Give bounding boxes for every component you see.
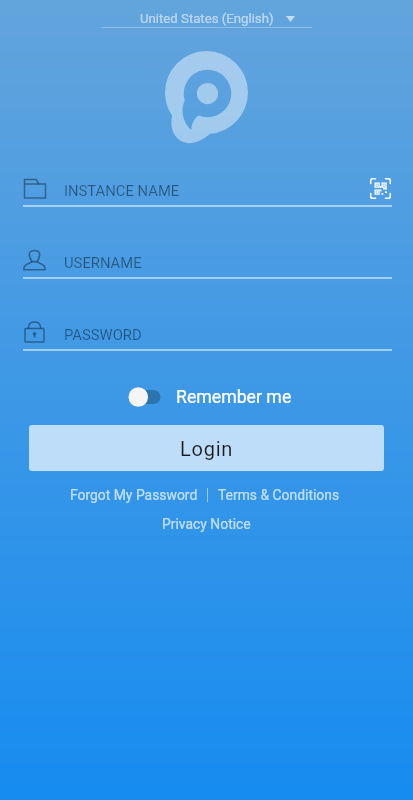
staticText: Remember me <box>176 387 292 408</box>
button[interactable]: United States (English) <box>101 10 312 27</box>
button[interactable]: Scan QR code <box>369 177 392 200</box>
staticText: USERNAME <box>64 254 142 271</box>
button[interactable]: Terms & Conditions <box>208 483 346 507</box>
staticText: INSTANCE NAME <box>64 182 180 199</box>
button[interactable]: Remember me <box>128 384 292 410</box>
staticText: Login <box>180 437 234 460</box>
button[interactable]: Forgot My Password <box>64 483 207 507</box>
button[interactable]: Privacy Notice <box>156 514 257 534</box>
button[interactable]: Login <box>29 425 384 471</box>
staticText: PASSWORD <box>64 326 142 343</box>
staticText: United States (English) <box>140 11 274 26</box>
